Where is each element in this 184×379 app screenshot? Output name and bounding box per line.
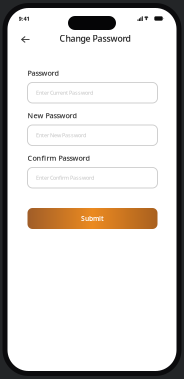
staticText: 9:41	[18, 15, 29, 22]
staticText: Change Password	[59, 33, 130, 44]
button[interactable]: Enter New Password	[27, 125, 157, 145]
staticText: Confirm Password	[27, 153, 89, 163]
staticText: New Password	[27, 111, 76, 120]
staticText: Submit	[81, 214, 104, 223]
button[interactable]: Enter Current Password	[27, 82, 157, 103]
staticText: Enter New Password	[36, 131, 86, 139]
button[interactable]: Back	[16, 30, 34, 48]
staticText: Enter Confirm Password	[36, 174, 94, 181]
staticText: Enter Current Password	[36, 89, 93, 96]
button[interactable]: Enter Confirm Password	[27, 167, 157, 188]
staticText: Password	[27, 68, 58, 78]
button[interactable]: Submit	[27, 208, 157, 229]
